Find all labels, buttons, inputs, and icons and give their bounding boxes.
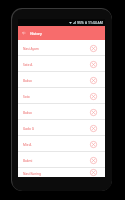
staticText: History xyxy=(30,31,42,36)
button[interactable]: Remove xyxy=(88,123,98,133)
staticText: Bakso xyxy=(23,79,33,83)
button[interactable]: Remove xyxy=(88,168,98,177)
button[interactable]: Remove xyxy=(88,43,98,53)
button[interactable]: Bakso xyxy=(18,104,105,119)
button[interactable]: Remove xyxy=(88,107,98,117)
button[interactable]: Sate A xyxy=(18,56,105,71)
staticText: Nasi Kuning xyxy=(23,172,42,176)
button[interactable]: Remove xyxy=(88,91,98,101)
staticText: Nasi Ayam xyxy=(23,47,39,51)
staticText: Sate A xyxy=(23,63,33,67)
staticText: Soto xyxy=(23,95,30,99)
button[interactable]: Soto xyxy=(18,88,105,103)
staticText: Gado G xyxy=(23,127,35,131)
button[interactable]: Remove xyxy=(88,139,98,149)
button[interactable]: Bakmi xyxy=(18,152,105,167)
button[interactable]: Remove xyxy=(88,59,98,69)
button[interactable]: Gado G xyxy=(18,120,105,135)
staticText: Mie A xyxy=(23,143,32,147)
button[interactable]: Bakso xyxy=(18,72,105,87)
button[interactable]: Remove xyxy=(88,75,98,85)
button[interactable]: Nasi Ayam xyxy=(18,40,105,55)
staticText: 95% xyxy=(77,20,84,25)
button[interactable]: Nasi Kuning xyxy=(18,168,105,177)
staticText: Bakso xyxy=(23,111,33,115)
staticText: Bakmi xyxy=(23,159,33,163)
button[interactable]: Mie A xyxy=(18,136,105,151)
staticText: 11:34 AM xyxy=(88,20,103,25)
button[interactable]: Back xyxy=(18,26,29,40)
button[interactable]: Remove xyxy=(88,155,98,165)
